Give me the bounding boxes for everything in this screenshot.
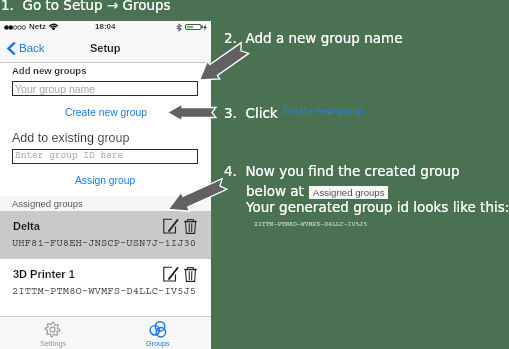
staticText: 4. Now you find the created group: [224, 163, 460, 179]
staticText: 2ITTM-PTM8O-WVMFS-D4LLC-IV5J5: [254, 221, 368, 228]
staticText: 2. Add a new group name: [224, 30, 403, 46]
button[interactable]: Assign group: [71, 173, 140, 189]
button[interactable]: Enter group ID here: [12, 149, 198, 164]
button[interactable]: Edit: [163, 218, 179, 234]
staticText: Your group name: [15, 83, 96, 95]
button[interactable]: Delete: [184, 218, 197, 234]
button[interactable]: Back: [5, 40, 47, 57]
button[interactable]: Create new group: [61, 105, 151, 121]
button[interactable]: Delete: [184, 266, 197, 282]
staticText: UHF81-FU8EH-JNSCP-USN7J-1IJ30: [12, 238, 197, 250]
button[interactable]: 3D Printer 1: [0, 259, 211, 307]
staticText: Enter group ID here: [15, 151, 124, 162]
staticText: Delta: [13, 220, 40, 232]
staticText: Netz: [29, 22, 46, 31]
staticText: Setup: [90, 42, 121, 54]
staticText: 1. Go to Setup → Groups: [1, 0, 171, 13]
staticText: Assigned groups: [12, 198, 83, 209]
button[interactable]: Create new group: [283, 107, 364, 116]
staticText: Add new groups: [12, 65, 87, 76]
button[interactable]: Delta: [0, 211, 211, 259]
staticText: below at: [246, 183, 304, 199]
staticText: Settings: [40, 339, 66, 347]
staticText: 3. Click: [224, 105, 278, 121]
staticText: Your generated group id looks like this:: [246, 199, 509, 215]
button[interactable]: Edit: [163, 266, 179, 282]
staticText: Groups: [146, 339, 170, 347]
staticText: Back: [19, 42, 45, 55]
staticText: 18:04: [95, 22, 116, 31]
button[interactable]: Settings: [0, 317, 105, 349]
staticText: Create new group: [283, 107, 364, 116]
staticText: Add to existing group: [12, 131, 130, 145]
button[interactable]: Groups: [105, 317, 211, 349]
button[interactable]: Your group name: [12, 81, 198, 96]
staticText: 2ITTM-PTM8O-WVMFS-D4LLC-IV5J5: [12, 286, 197, 298]
staticText: 3D Printer 1: [13, 268, 75, 280]
staticText: Assigned groups: [313, 187, 385, 198]
